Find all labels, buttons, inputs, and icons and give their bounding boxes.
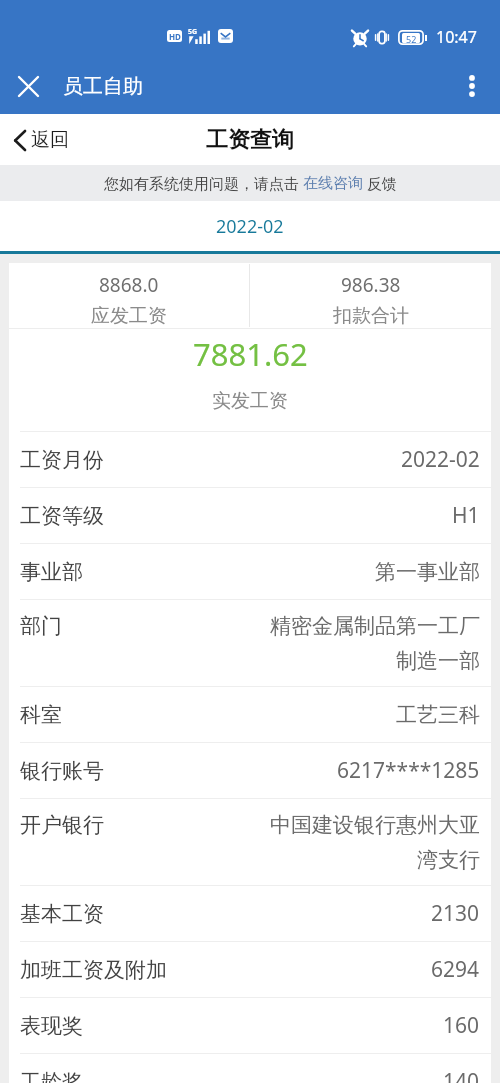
button[interactable]: 在线咨询 (303, 174, 363, 193)
button[interactable]: 科室 (9, 687, 491, 742)
staticText: 6294 (431, 955, 480, 984)
staticText: 部门 (20, 613, 62, 639)
staticText: 5G (188, 27, 198, 37)
staticText: 工龄奖 (20, 1069, 83, 1083)
button[interactable]: 工资等级 (9, 488, 491, 543)
staticText: 中国建设银行惠州大亚 (270, 812, 480, 838)
staticText: 52 (406, 33, 417, 43)
staticText: 开户银行 (20, 812, 104, 838)
staticText: 扣款合计 (333, 304, 409, 328)
staticText: 加班工资及附加 (20, 957, 167, 983)
staticText: 员工自助 (63, 74, 143, 99)
button[interactable]: 银行账号 (9, 743, 491, 798)
staticText: 实发工资 (212, 389, 288, 413)
staticText: 160 (443, 1011, 480, 1040)
button[interactable]: 2022-02 (0, 201, 500, 251)
staticText: 7881.62 (193, 333, 308, 375)
staticText: 8868.0 (99, 272, 159, 298)
button[interactable]: 工龄奖 (9, 1054, 491, 1083)
button[interactable]: 部门 (9, 600, 491, 686)
staticText: 科室 (20, 702, 62, 728)
button[interactable]: 返回 (8, 120, 75, 160)
staticText: 反馈 (363, 173, 397, 193)
staticText: 返回 (31, 128, 69, 152)
staticText: 工艺三科 (396, 702, 480, 728)
staticText: 工资月份 (20, 447, 104, 473)
staticText: HD (169, 31, 181, 42)
staticText: 6217****1285 (337, 756, 480, 785)
staticText: 工资查询 (206, 126, 294, 154)
staticText: 10:47 (436, 26, 477, 48)
staticText: 表现奖 (20, 1013, 83, 1039)
button[interactable]: 基本工资 (9, 886, 491, 941)
button[interactable]: 开户银行 (9, 799, 491, 885)
staticText: 应发工资 (91, 304, 167, 328)
staticText: 140 (443, 1067, 480, 1083)
staticText: 您如有系统使用问题，请点击 (104, 173, 303, 193)
staticText: H1 (452, 501, 480, 530)
staticText: 精密金属制品第一工厂 (270, 613, 480, 639)
button[interactable]: 8868.0 (9, 263, 249, 328)
staticText: 2022-02 (401, 445, 480, 474)
button[interactable]: 986.38 (250, 263, 491, 328)
staticText: 银行账号 (20, 758, 104, 784)
staticText: 2130 (431, 899, 480, 928)
button[interactable]: Close (6, 64, 50, 108)
staticText: 湾支行 (417, 847, 480, 873)
staticText: 第一事业部 (375, 559, 480, 585)
staticText: 制造一部 (396, 648, 480, 674)
button[interactable]: 工资月份 (9, 432, 491, 487)
staticText: 986.38 (341, 272, 401, 298)
button[interactable]: 事业部 (9, 544, 491, 599)
button[interactable]: More options (450, 64, 494, 108)
button[interactable]: 表现奖 (9, 998, 491, 1053)
button[interactable]: 加班工资及附加 (9, 942, 491, 997)
staticText: 基本工资 (20, 901, 104, 927)
staticText: 工资等级 (20, 503, 104, 529)
staticText: 事业部 (20, 559, 83, 585)
staticText: 2022-02 (216, 214, 284, 239)
